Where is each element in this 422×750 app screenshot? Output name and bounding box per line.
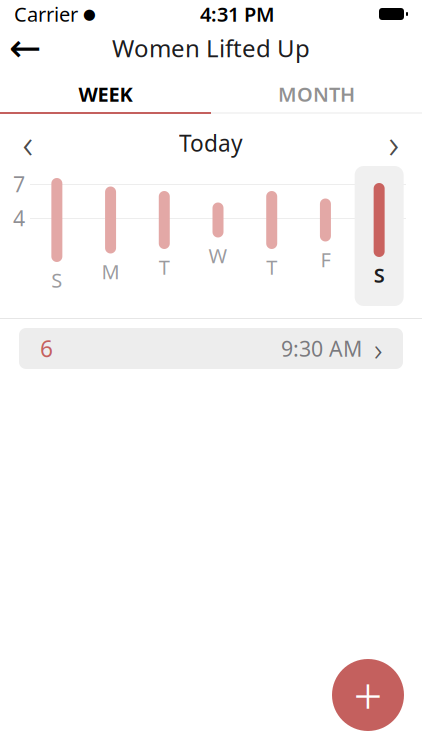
staticText: S: [51, 267, 62, 293]
button[interactable]: Back: [0, 26, 50, 70]
staticText: T: [266, 254, 277, 280]
staticText: T: [159, 254, 170, 280]
button[interactable]: WEEK: [0, 76, 211, 112]
staticText: M: [102, 258, 120, 285]
staticText: ›: [388, 116, 399, 169]
staticText: Carrier: [14, 1, 78, 27]
staticText: ‹: [22, 116, 33, 169]
staticText: Women Lifted Up: [112, 32, 310, 64]
staticText: 4: [13, 204, 25, 232]
staticText: ›: [374, 327, 382, 370]
staticText: MONTH: [278, 81, 355, 107]
staticText: WEEK: [78, 81, 132, 107]
button[interactable]: Previous week: [0, 120, 56, 166]
button[interactable]: MONTH: [211, 76, 422, 112]
button[interactable]: Next week: [366, 120, 422, 166]
staticText: F: [320, 246, 330, 273]
staticText: 4:31 PM: [200, 1, 275, 27]
staticText: W: [208, 242, 227, 269]
staticText: Today: [179, 128, 243, 158]
staticText: 9:30 AM: [281, 334, 362, 363]
staticText: 6: [40, 333, 53, 363]
staticText: +: [353, 661, 382, 729]
button[interactable]: 6: [19, 328, 403, 369]
staticText: ←: [9, 26, 41, 70]
staticText: ●: [83, 6, 96, 22]
staticText: 7: [13, 170, 25, 198]
staticText: S: [374, 262, 385, 288]
button[interactable]: Add: [332, 659, 404, 731]
